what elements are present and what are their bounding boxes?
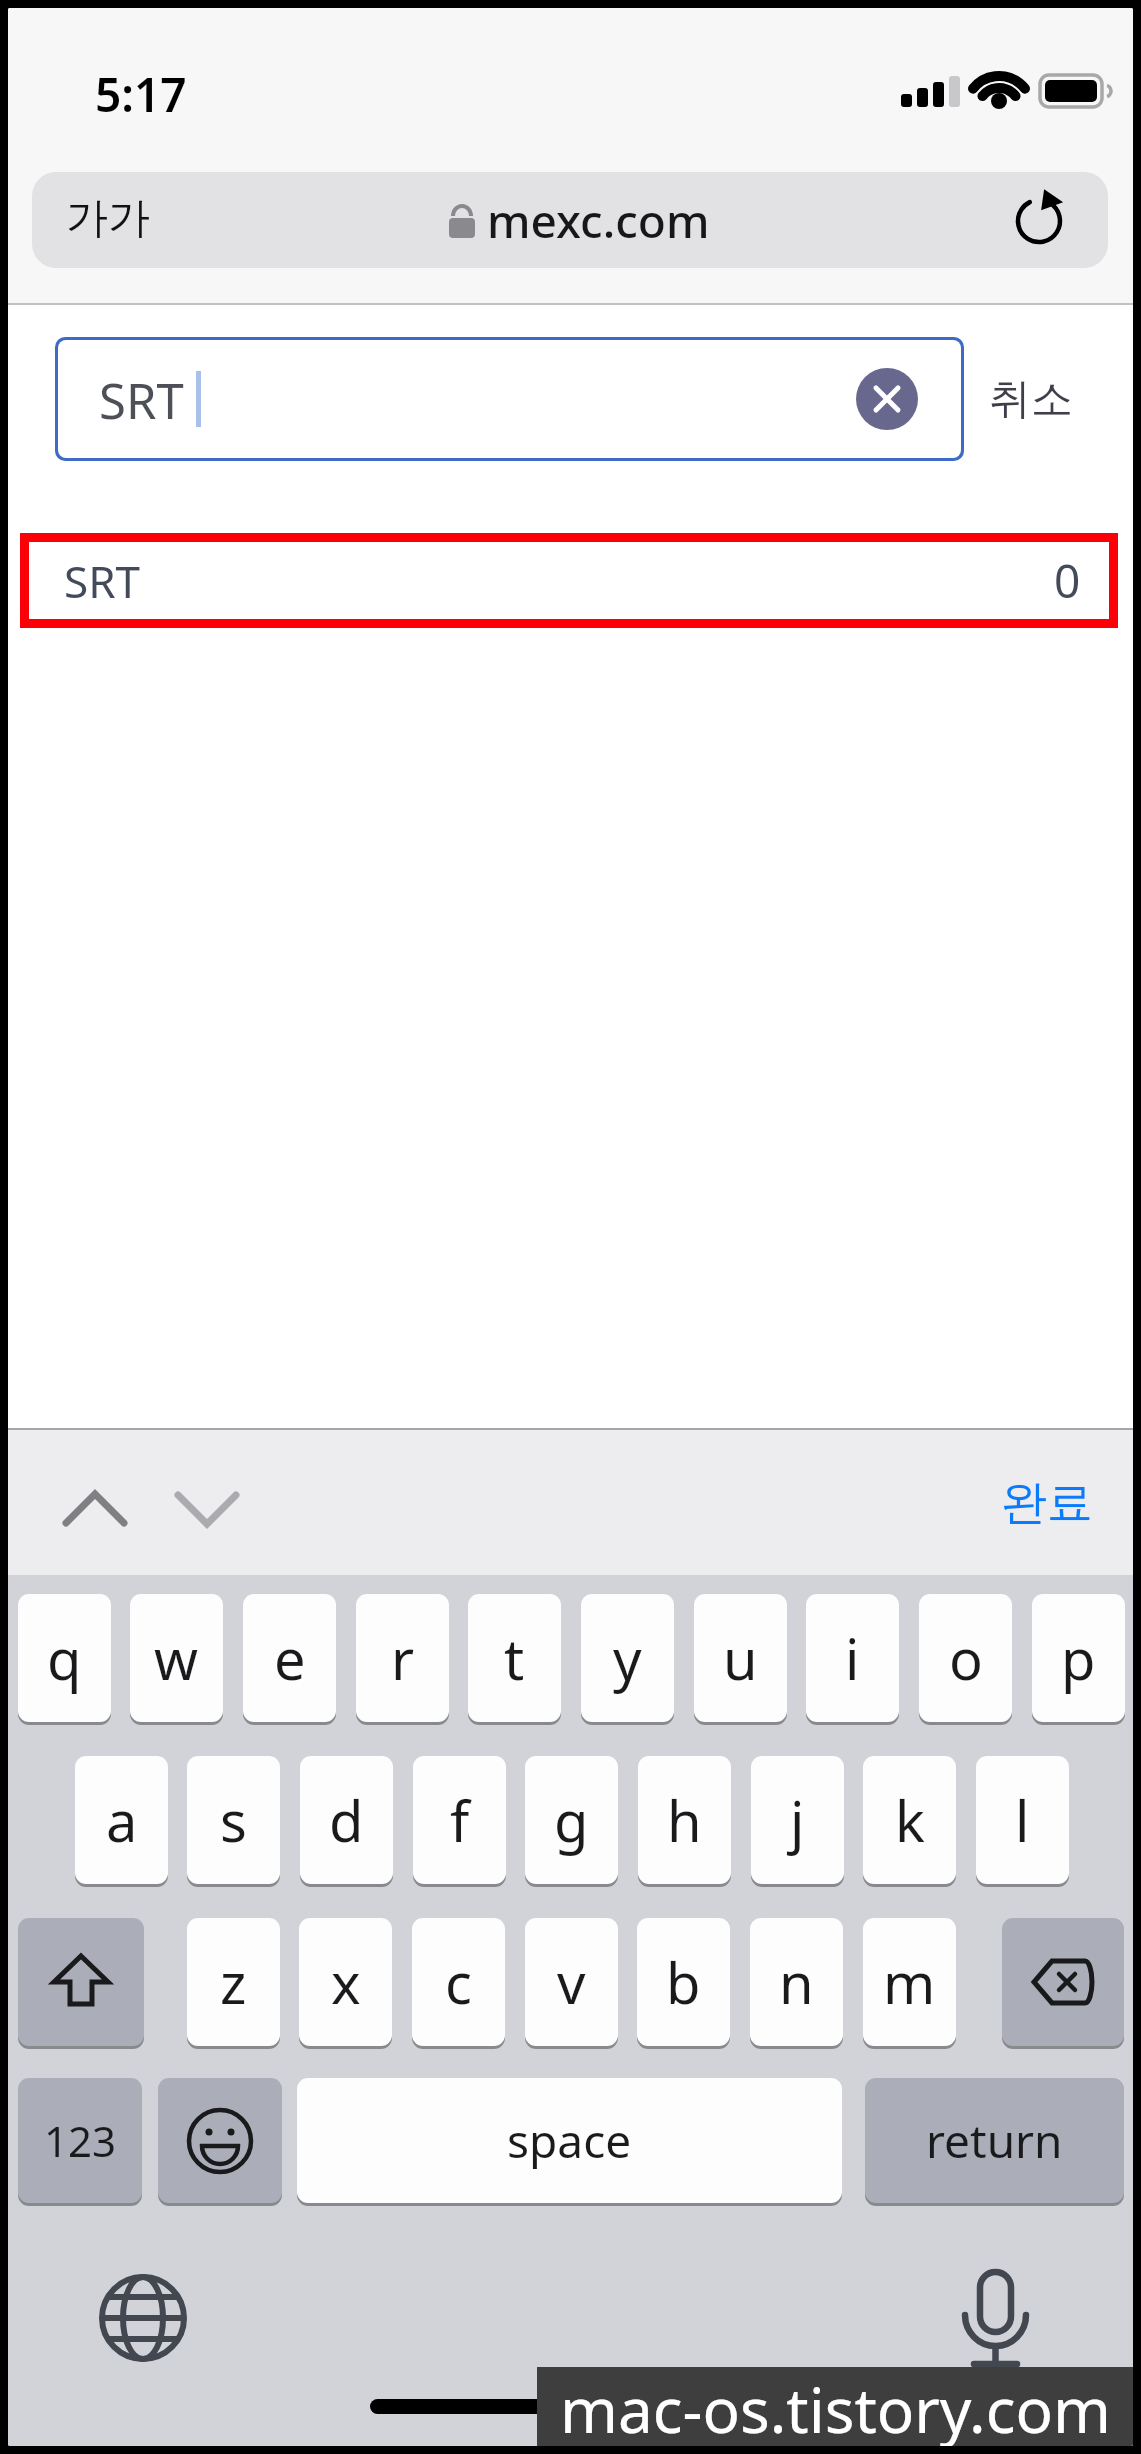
- button[interactable]: 취소: [983, 368, 1078, 430]
- button[interactable]: a: [75, 1756, 168, 1887]
- staticText: mexc.com: [487, 189, 710, 252]
- button[interactable]: 123: [18, 2078, 142, 2206]
- staticText: c: [445, 1944, 472, 2020]
- button[interactable]: v: [525, 1918, 618, 2049]
- staticText: p: [1061, 1620, 1096, 1696]
- staticText: 123: [44, 2112, 117, 2169]
- staticText: n: [779, 1944, 814, 2020]
- staticText: x: [331, 1944, 361, 2020]
- button[interactable]: i: [806, 1594, 899, 1725]
- button[interactable]: [1002, 1918, 1124, 2049]
- button[interactable]: 완료: [1001, 1474, 1093, 1532]
- staticText: 5:17: [95, 63, 187, 126]
- button[interactable]: d: [300, 1756, 393, 1887]
- staticText: z: [220, 1944, 247, 2020]
- button[interactable]: y: [581, 1594, 674, 1725]
- button[interactable]: return: [865, 2078, 1124, 2206]
- button[interactable]: c: [412, 1918, 505, 2049]
- staticText: e: [274, 1620, 306, 1696]
- staticText: a: [106, 1782, 138, 1858]
- button[interactable]: 가가: [32, 172, 1108, 268]
- button[interactable]: [175, 1492, 239, 1528]
- staticText: q: [47, 1620, 82, 1696]
- button[interactable]: [158, 2078, 282, 2206]
- staticText: SRT: [64, 551, 140, 611]
- staticText: 완료: [1001, 1474, 1093, 1532]
- button[interactable]: g: [525, 1756, 618, 1887]
- staticText: y: [613, 1620, 642, 1696]
- button[interactable]: r: [356, 1594, 449, 1725]
- staticText: m: [883, 1944, 936, 2020]
- button[interactable]: w: [130, 1594, 223, 1725]
- button[interactable]: e: [243, 1594, 336, 1725]
- staticText: u: [723, 1620, 758, 1696]
- button[interactable]: q: [18, 1594, 111, 1725]
- staticText: 가가: [66, 192, 150, 245]
- button[interactable]: n: [750, 1918, 843, 2049]
- staticText: w: [154, 1620, 199, 1696]
- button[interactable]: k: [863, 1756, 956, 1887]
- staticText: l: [1015, 1782, 1030, 1858]
- button[interactable]: [953, 2270, 1038, 2370]
- staticText: t: [504, 1620, 525, 1696]
- button[interactable]: b: [637, 1918, 730, 2049]
- staticText: b: [666, 1944, 701, 2020]
- button[interactable]: SRT: [29, 542, 1109, 619]
- staticText: f: [450, 1782, 470, 1858]
- staticText: space: [507, 2109, 632, 2172]
- staticText: return: [926, 2109, 1063, 2172]
- button[interactable]: [18, 1918, 144, 2049]
- staticText: d: [329, 1782, 364, 1858]
- button[interactable]: z: [187, 1918, 280, 2049]
- button[interactable]: s: [187, 1756, 280, 1887]
- button[interactable]: [98, 2273, 188, 2363]
- button[interactable]: l: [976, 1756, 1069, 1887]
- button[interactable]: [856, 368, 918, 430]
- staticText: v: [557, 1944, 586, 2020]
- staticText: SRT: [99, 367, 184, 434]
- button[interactable]: space: [297, 2078, 842, 2206]
- button[interactable]: p: [1032, 1594, 1125, 1725]
- staticText: j: [790, 1782, 805, 1858]
- button[interactable]: j: [751, 1756, 844, 1887]
- button[interactable]: o: [919, 1594, 1012, 1725]
- staticText: mac-os.tistory.com: [560, 2367, 1111, 2446]
- button[interactable]: SRT: [55, 337, 964, 461]
- button[interactable]: f: [413, 1756, 506, 1887]
- button[interactable]: h: [638, 1756, 731, 1887]
- button[interactable]: x: [299, 1918, 392, 2049]
- staticText: g: [554, 1782, 589, 1858]
- staticText: o: [949, 1620, 983, 1696]
- staticText: s: [220, 1782, 247, 1858]
- staticText: k: [895, 1782, 925, 1858]
- button[interactable]: [63, 1490, 127, 1526]
- button[interactable]: m: [863, 1918, 956, 2049]
- button[interactable]: t: [468, 1594, 561, 1725]
- staticText: 취소: [989, 373, 1073, 426]
- staticText: r: [391, 1620, 415, 1696]
- staticText: h: [667, 1782, 702, 1858]
- staticText: 0: [1054, 549, 1081, 612]
- staticText: i: [845, 1620, 860, 1696]
- button[interactable]: u: [694, 1594, 787, 1725]
